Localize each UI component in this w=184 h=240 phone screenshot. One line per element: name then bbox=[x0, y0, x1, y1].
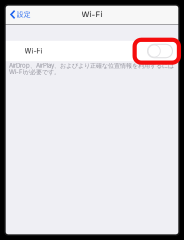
staticText: Wi-Fiが必要です。 bbox=[9, 68, 60, 76]
button[interactable]: Wi-Fi bbox=[5, 41, 179, 61]
staticText: Wi-Fi bbox=[25, 47, 43, 55]
staticText: AirDrop、AirPlay、およびより正確な位置情報を利用するには bbox=[9, 62, 174, 69]
staticText: 設定 bbox=[17, 10, 31, 19]
button[interactable]: 設定 bbox=[5, 6, 35, 23]
staticText: Wi-Fi bbox=[81, 10, 102, 19]
